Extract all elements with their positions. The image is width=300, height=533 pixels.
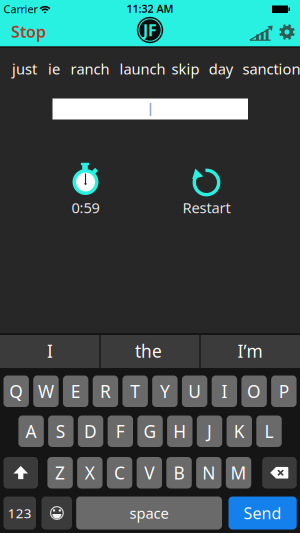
staticText: V (144, 461, 154, 484)
staticText: T (130, 380, 140, 403)
staticText: Send (244, 502, 282, 524)
staticText: Y (160, 380, 170, 403)
staticText: S (56, 420, 66, 443)
staticText: J (207, 420, 212, 443)
staticText: just (12, 59, 37, 79)
staticText: H (173, 420, 186, 443)
staticText: Stop (11, 21, 46, 42)
staticText: I (221, 380, 227, 403)
staticText: sanction (242, 59, 300, 79)
staticText: ie (48, 59, 60, 79)
staticText: Q (9, 380, 23, 403)
staticText: O (247, 380, 261, 403)
staticText: space (130, 503, 169, 523)
staticText: R (100, 380, 111, 403)
staticText: the (135, 339, 162, 362)
staticText: skip (171, 59, 199, 79)
staticText: 123 (8, 504, 32, 522)
staticText: U (188, 380, 201, 403)
staticText: Z (55, 461, 65, 484)
staticText: P (279, 380, 289, 403)
staticText: K (234, 420, 245, 443)
staticText: 0:59 (71, 198, 99, 217)
staticText: D (84, 420, 97, 443)
staticText: ranch (71, 59, 110, 79)
staticText: C (114, 461, 125, 484)
staticText: L (264, 420, 273, 443)
staticText: JF (143, 19, 157, 41)
staticText: I (47, 339, 53, 362)
staticText: E (71, 380, 81, 403)
staticText: Carrier (3, 2, 37, 16)
staticText: launch (119, 59, 165, 79)
staticText: M (230, 461, 246, 484)
staticText: day (209, 59, 233, 79)
staticText: W (38, 380, 54, 403)
staticText: B (174, 461, 185, 484)
staticText: X (85, 461, 95, 484)
staticText: A (26, 420, 37, 443)
staticText: N (202, 461, 215, 484)
staticText: Restart (182, 198, 230, 217)
staticText: F (116, 420, 125, 443)
staticText: I’m (237, 339, 262, 362)
staticText: G (144, 420, 157, 443)
staticText: 11:32 AM (126, 1, 173, 16)
